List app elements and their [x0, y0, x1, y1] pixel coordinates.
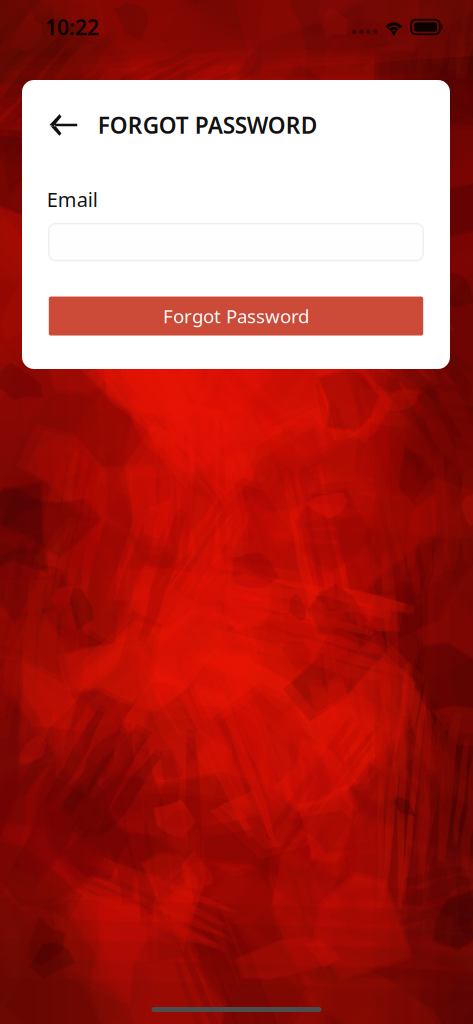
button[interactable]: Back [49, 109, 83, 141]
button[interactable]: Forgot Password [49, 297, 423, 336]
staticText: Forgot Password [163, 304, 309, 328]
staticText: FORGOT PASSWORD [98, 110, 318, 140]
staticText: Email [47, 186, 98, 213]
staticText: 10:22 [45, 13, 99, 41]
